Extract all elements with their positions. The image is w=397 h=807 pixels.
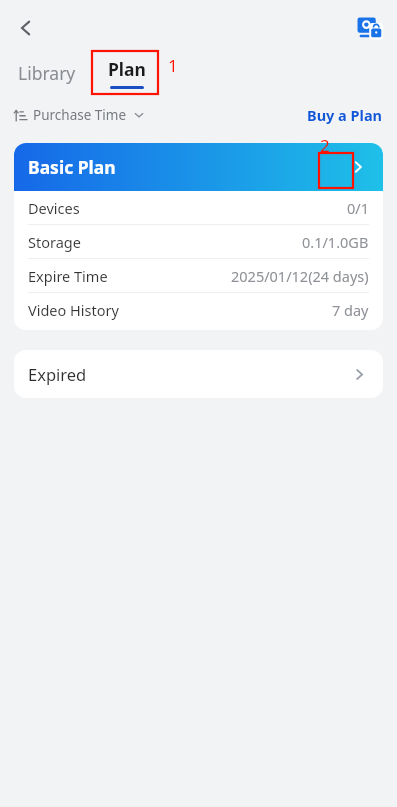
staticText: Library: [18, 61, 76, 85]
button[interactable]: Secure device: [350, 8, 390, 48]
staticText: 7 day: [332, 300, 369, 320]
staticText: Buy a Plan: [307, 105, 383, 125]
staticText: Devices: [28, 198, 80, 218]
staticText: Storage: [28, 232, 81, 252]
button[interactable]: Purchase Time: [10, 103, 148, 127]
button[interactable]: Plan: [102, 55, 152, 91]
staticText: Video History: [28, 300, 119, 320]
button[interactable]: Library: [14, 55, 80, 91]
staticText: Plan: [108, 57, 146, 81]
button[interactable]: Buy a Plan: [303, 102, 387, 128]
staticText: 2025/01/12(24 days): [231, 266, 369, 286]
staticText: Basic Plan: [28, 155, 116, 179]
staticText: 1: [168, 54, 178, 77]
staticText: 2: [320, 134, 330, 157]
staticText: Expire Time: [28, 266, 108, 286]
button[interactable]: Expired: [14, 350, 383, 398]
button[interactable]: Plan details: [341, 150, 375, 184]
staticText: 0/1: [347, 198, 369, 218]
staticText: Expired: [28, 363, 87, 385]
staticText: Purchase Time: [33, 106, 127, 124]
button[interactable]: Back: [6, 8, 46, 48]
staticText: 0.1/1.0GB: [302, 232, 369, 252]
